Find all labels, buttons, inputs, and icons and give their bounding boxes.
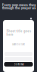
button[interactable]: Close xyxy=(30,18,32,20)
staticText: Every pop owes they xyxy=(2,3,36,7)
staticText: through the prayer as xyxy=(2,6,36,10)
staticText: subtitle text xyxy=(12,43,25,46)
staticText: Sheet title goes here xyxy=(6,30,30,36)
staticText: Continue xyxy=(13,63,23,66)
button[interactable]: Continue xyxy=(4,62,33,67)
